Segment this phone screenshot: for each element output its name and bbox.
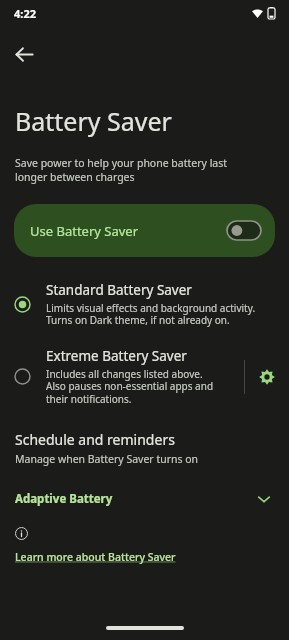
- staticText: Battery Saver: [15, 104, 172, 138]
- button[interactable]: Learn more about Battery Saver: [0, 548, 191, 566]
- button[interactable]: Schedule and reminders: [0, 428, 289, 468]
- button[interactable]: Use Battery Saver: [14, 204, 275, 257]
- button[interactable]: Back: [6, 36, 42, 72]
- staticText: Includes all changes listed above. Also …: [46, 367, 214, 406]
- button[interactable]: Extreme Battery Saver: [0, 345, 244, 408]
- button[interactable]: Adaptive Battery: [0, 488, 289, 510]
- button[interactable]: Standard Battery Saver: [0, 279, 289, 329]
- button[interactable]: Extreme Battery Saver settings: [245, 355, 289, 399]
- staticText: Use Battery Saver: [30, 222, 139, 240]
- staticText: Learn more about Battery Saver: [15, 550, 176, 564]
- staticText: Manage when Battery Saver turns on: [15, 452, 199, 466]
- staticText: 4:22: [14, 6, 36, 21]
- staticText: Schedule and reminders: [15, 430, 175, 449]
- staticText: Standard Battery Saver: [46, 281, 192, 299]
- staticText: Adaptive Battery: [15, 491, 113, 507]
- staticText: Save power to help your phone battery la…: [15, 156, 259, 184]
- staticText: Extreme Battery Saver: [46, 347, 187, 365]
- staticText: Limits visual effects and background act…: [46, 301, 256, 327]
